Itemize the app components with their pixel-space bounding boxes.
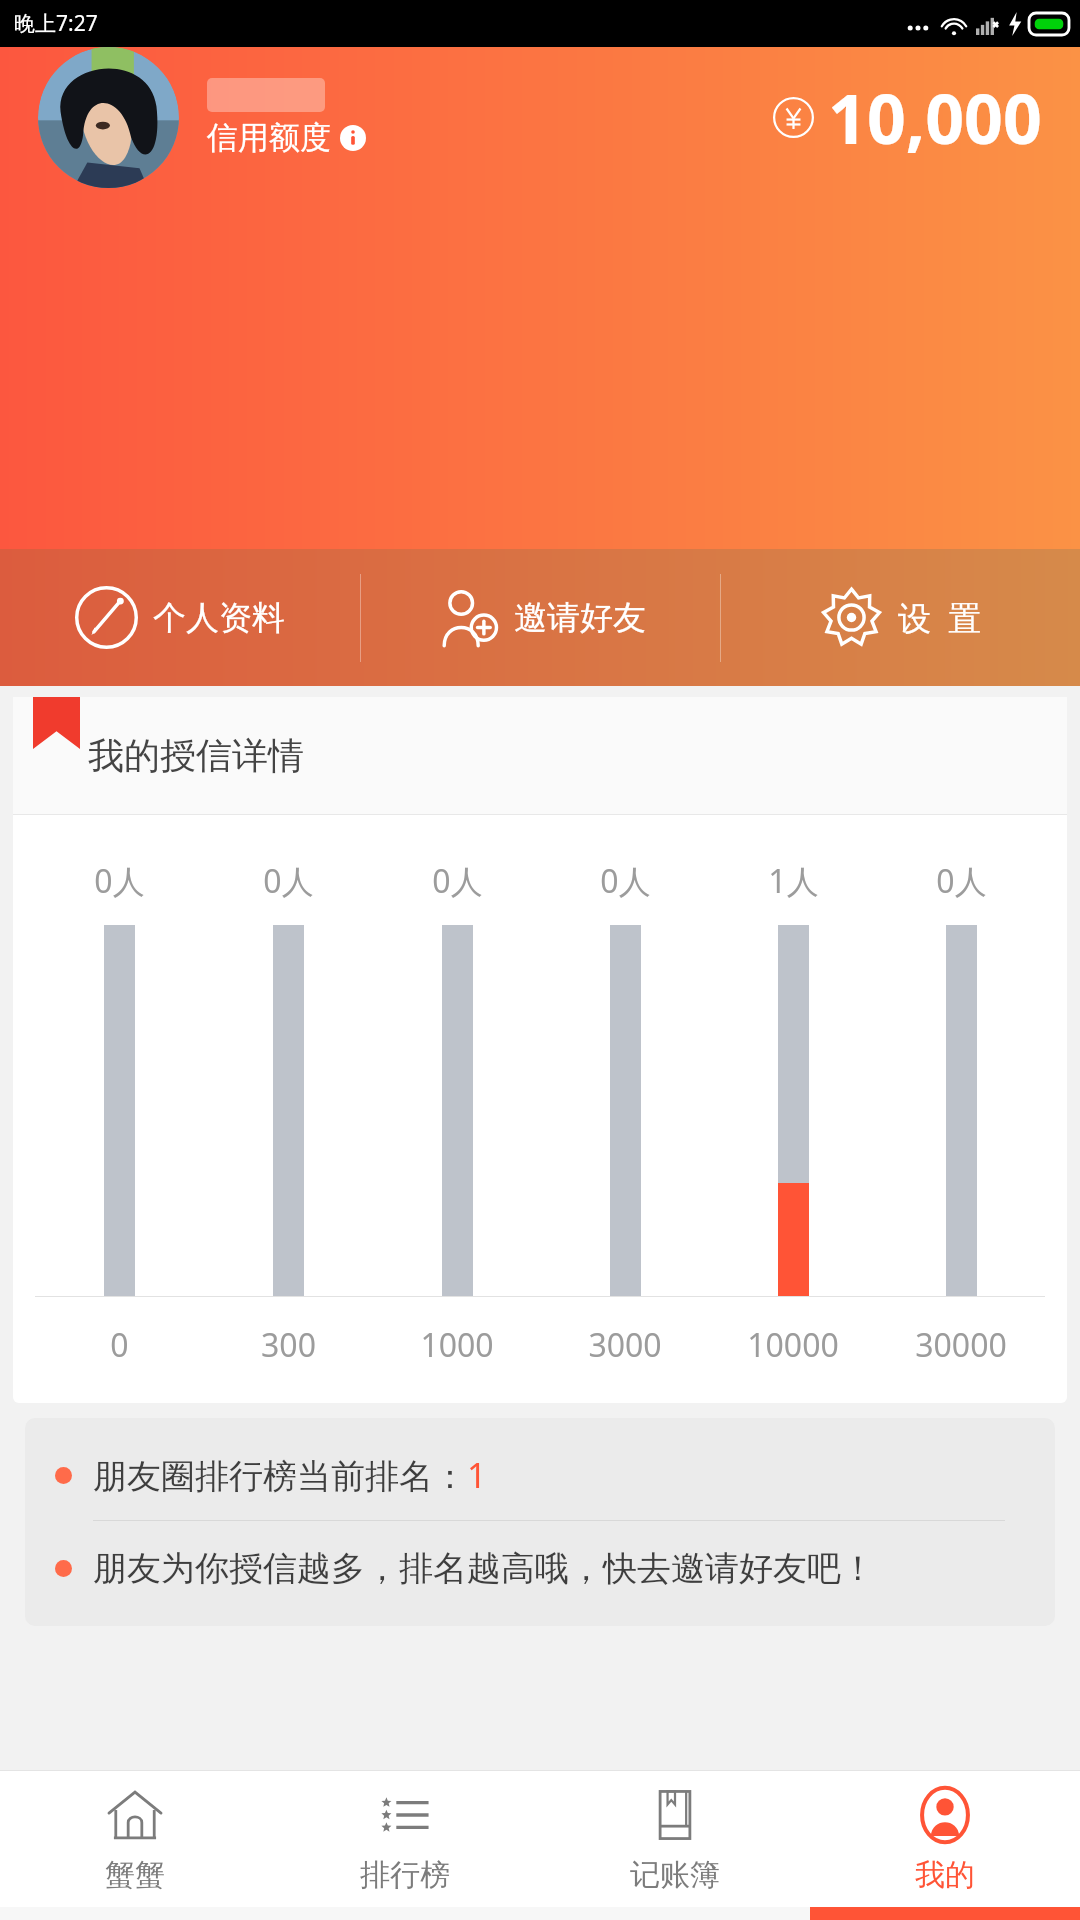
button[interactable]: 蟹蟹 — [0, 1771, 270, 1907]
staticText: 信用额度 — [207, 118, 331, 157]
staticText: 邀请好友 — [514, 597, 646, 639]
staticText: 设 置 — [898, 595, 982, 640]
button[interactable]: 我的 — [810, 1771, 1080, 1907]
staticText: 1000 — [420, 1323, 494, 1367]
button[interactable]: 排行榜 — [270, 1771, 540, 1907]
staticText: 朋友圈排行榜当前排名：1 — [93, 1452, 487, 1498]
staticText: 蟹蟹 — [105, 1856, 165, 1894]
staticText: 0人 — [936, 859, 987, 903]
button[interactable]: 记账簿 — [540, 1771, 810, 1907]
staticText: 朋友为你授信越多，排名越高哦，快去邀请好友吧！ — [93, 1547, 875, 1590]
staticText: 0人 — [263, 859, 314, 903]
staticText: 晚上7:27 — [14, 9, 98, 38]
staticText: 0人 — [600, 859, 651, 903]
staticText: 10000 — [747, 1323, 839, 1367]
staticText: 0人 — [94, 859, 145, 903]
staticText: 300 — [261, 1323, 316, 1367]
staticText: 30000 — [915, 1323, 1007, 1367]
button[interactable]: 信用额度说明 — [340, 125, 366, 151]
button[interactable]: 个人资料 — [0, 549, 360, 686]
staticText: 0 — [110, 1323, 129, 1367]
staticText: 记账簿 — [630, 1856, 720, 1894]
staticText: 1人 — [768, 859, 819, 903]
staticText: 3000 — [588, 1323, 662, 1367]
staticText: 10,000 — [828, 71, 1042, 164]
staticText: 个人资料 — [153, 597, 285, 639]
button[interactable]: 设 置 — [721, 549, 1080, 686]
button[interactable]: 邀请好友 — [361, 549, 720, 686]
staticText: 我的 — [915, 1856, 975, 1894]
staticText: 0人 — [432, 859, 483, 903]
staticText: 排行榜 — [360, 1856, 450, 1894]
button[interactable] — [38, 47, 179, 188]
staticText: 我的授信详情 — [88, 733, 304, 778]
